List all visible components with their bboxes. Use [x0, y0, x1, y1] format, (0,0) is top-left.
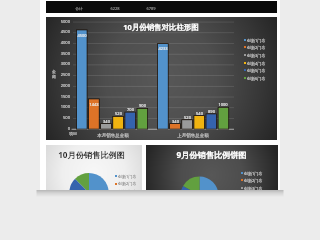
staticText: 创新1门店 — [118, 174, 137, 179]
staticText: 3000 — [60, 61, 70, 67]
staticText: 4000 — [60, 40, 70, 46]
staticText: 0 — [67, 126, 70, 132]
staticText: 创新1门店 — [244, 171, 263, 176]
button[interactable]: 9月份销售比例饼图 — [146, 145, 278, 190]
staticText: 340 — [172, 119, 179, 124]
staticText: 540 — [196, 111, 203, 116]
staticText: 创新5门店 — [247, 68, 266, 73]
staticText: 创新1门店 — [247, 38, 266, 43]
staticText: 1000 — [60, 104, 70, 110]
staticText: 2000 — [60, 83, 70, 89]
staticText: 4500 — [60, 29, 70, 35]
staticText: 创新3门店 — [247, 53, 266, 58]
staticText: 上月销售总金额 — [177, 133, 209, 139]
staticText: 520 — [184, 115, 191, 120]
staticText: 10月份销售比例图 — [58, 149, 125, 160]
staticText: 创新4门店 — [247, 61, 266, 66]
staticText: 本月销售总金额 — [97, 133, 129, 139]
staticText: 340 — [103, 119, 110, 124]
staticText: 创新6门店 — [247, 76, 266, 81]
staticText: 6789 — [146, 6, 156, 11]
staticText: 创新2门店 — [244, 178, 263, 183]
staticText: 520 — [115, 111, 122, 116]
staticText: 9月份销售比例饼图 — [176, 149, 247, 160]
staticText: 创新3门店 — [118, 189, 137, 190]
staticText: 3500 — [60, 51, 70, 57]
button[interactable]: 10月份销售对比柱形图 — [46, 17, 277, 140]
staticText: 890 — [208, 109, 215, 114]
button[interactable]: 10月份销售比例图 — [46, 145, 142, 190]
staticText: 1443 — [89, 102, 99, 107]
staticText: 500 — [62, 115, 70, 121]
staticText: 4500 — [77, 33, 87, 38]
staticText: 700 — [127, 107, 134, 112]
staticText: 1000 — [218, 102, 228, 107]
staticText: 合计 — [75, 6, 83, 11]
staticText: 项目 — [69, 131, 77, 136]
staticText: 10月份销售对比柱形图 — [123, 22, 199, 32]
staticText: 创新3门店 — [244, 186, 263, 190]
staticText: 创新2门店 — [247, 45, 266, 50]
staticText: 5000 — [60, 19, 70, 25]
button[interactable]: 合计行 — [46, 1, 277, 13]
staticText: 金 — [52, 69, 56, 74]
staticText: 额 — [52, 74, 56, 79]
staticText: 900 — [139, 103, 146, 108]
staticText: 4233 — [158, 46, 168, 51]
staticText: 2500 — [60, 72, 70, 78]
staticText: 1500 — [60, 94, 70, 100]
staticText: 创新2门店 — [118, 181, 137, 186]
staticText: 6228 — [110, 6, 120, 11]
